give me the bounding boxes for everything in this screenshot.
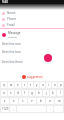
button[interactable]: i xyxy=(46,82,51,88)
staticText: h xyxy=(38,91,40,95)
button[interactable]: a xyxy=(1,90,7,96)
staticText: t xyxy=(30,83,32,87)
button[interactable]: ?123 xyxy=(1,106,9,112)
staticText: g xyxy=(31,91,33,95)
staticText: d xyxy=(17,91,19,95)
button[interactable]: l xyxy=(57,90,63,96)
staticText: Name xyxy=(7,11,16,15)
staticText: e xyxy=(17,83,19,87)
staticText: y xyxy=(36,83,38,87)
staticText: . xyxy=(50,107,51,111)
button[interactable]: y xyxy=(34,82,39,88)
staticText: p xyxy=(60,83,62,87)
staticText: Item line one xyxy=(2,42,21,46)
staticText: q xyxy=(3,83,5,87)
button[interactable]: b xyxy=(37,98,45,104)
staticText: z xyxy=(4,99,6,103)
button[interactable]: Phone xyxy=(2,16,62,22)
staticText: u xyxy=(42,83,44,87)
button[interactable]: e xyxy=(15,82,21,88)
staticText: k xyxy=(52,91,54,95)
button[interactable]: w xyxy=(8,82,14,88)
button[interactable]: z xyxy=(1,98,9,104)
staticText: suggestion xyxy=(27,75,43,79)
button[interactable]: j xyxy=(43,90,49,96)
button[interactable]: v xyxy=(28,98,36,104)
staticText: m xyxy=(58,99,61,103)
staticText: f xyxy=(24,91,26,95)
button[interactable]: m xyxy=(55,98,63,104)
staticText: Email xyxy=(7,23,15,27)
staticText: s xyxy=(10,91,12,95)
staticText: r xyxy=(24,83,26,87)
staticText: v xyxy=(31,99,33,103)
staticText: b xyxy=(40,99,42,103)
staticText: o xyxy=(54,83,56,87)
staticText: Item line two xyxy=(2,50,21,54)
button[interactable]: g xyxy=(29,90,35,96)
staticText: i xyxy=(48,83,49,87)
button[interactable]: Name xyxy=(2,10,62,16)
button[interactable]: k xyxy=(50,90,56,96)
button[interactable]: t xyxy=(28,82,33,88)
button[interactable]: r xyxy=(22,82,27,88)
staticText: j xyxy=(46,91,47,95)
button[interactable]: f xyxy=(22,90,28,96)
button[interactable]: . xyxy=(47,106,53,112)
button[interactable]: s xyxy=(8,90,14,96)
staticText: , xyxy=(13,107,14,111)
staticText: ?123 xyxy=(2,107,9,111)
staticText: Item line three xyxy=(2,60,23,64)
staticText: subtitle xyxy=(8,35,17,38)
staticText: a xyxy=(3,91,5,95)
button[interactable]: Email xyxy=(2,22,62,28)
button[interactable]: n xyxy=(46,98,54,104)
staticText: l xyxy=(60,91,61,95)
button[interactable]: p xyxy=(58,82,63,88)
button[interactable]: d xyxy=(15,90,21,96)
staticText: x xyxy=(13,99,15,103)
button[interactable]: u xyxy=(40,82,45,88)
staticText: Phone xyxy=(7,17,17,21)
button[interactable]: q xyxy=(1,82,7,88)
button[interactable]: x xyxy=(10,98,18,104)
staticText: Message xyxy=(8,31,21,35)
button[interactable]: c xyxy=(19,98,27,104)
button[interactable]: o xyxy=(52,82,57,88)
staticText: n xyxy=(49,99,51,103)
button[interactable]: Add xyxy=(44,54,52,62)
staticText: w xyxy=(10,83,13,87)
button[interactable]: , xyxy=(10,106,16,112)
staticText: c xyxy=(22,99,24,103)
button[interactable]: h xyxy=(36,90,42,96)
staticText: 9:30 xyxy=(2,0,8,4)
